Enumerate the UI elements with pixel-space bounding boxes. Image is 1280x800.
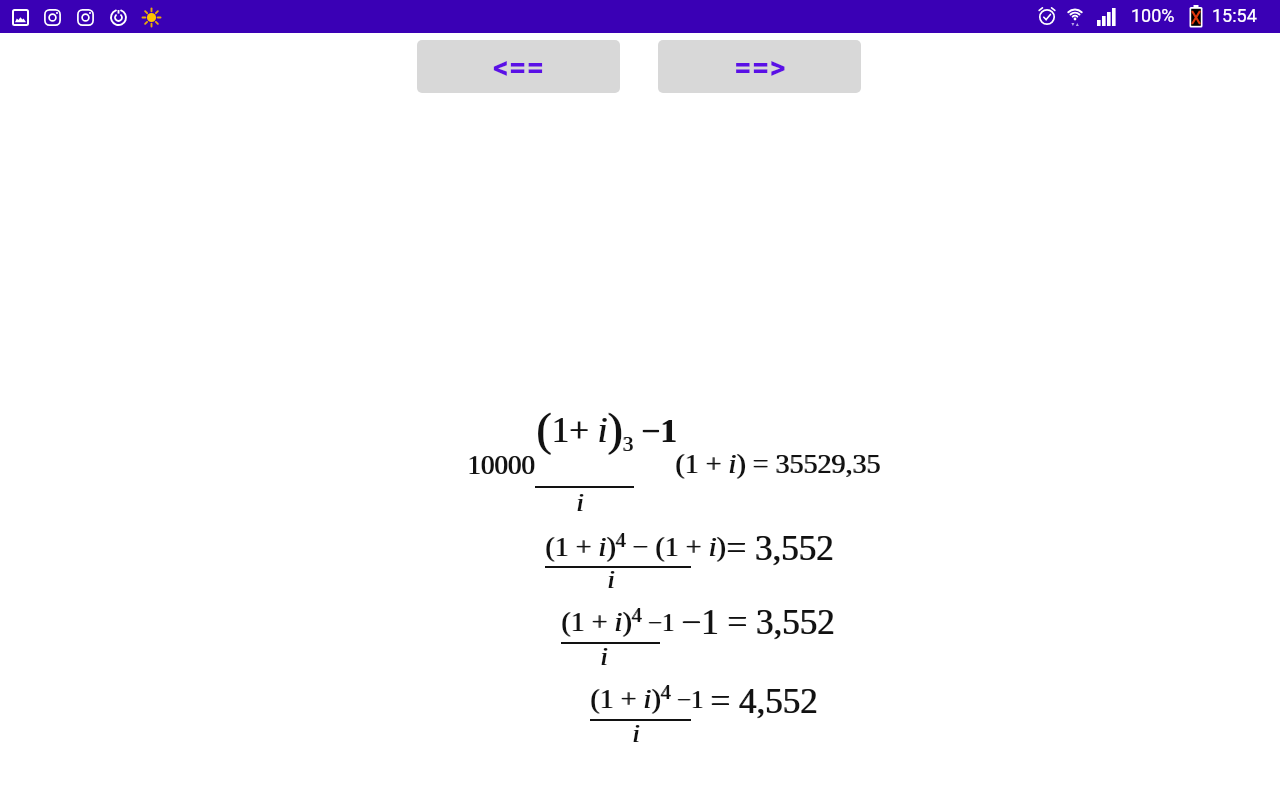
staticText: i xyxy=(608,565,616,594)
staticText: = 3,552 xyxy=(726,529,834,568)
staticText: i xyxy=(577,488,585,517)
staticText: (1 + i)4 −1 xyxy=(561,604,675,637)
staticText: (1 + i) = 35529,35 xyxy=(675,448,881,479)
staticText: i xyxy=(601,642,609,671)
staticText: i xyxy=(633,719,641,748)
staticText: (1+ i)3 −1 xyxy=(536,404,677,456)
staticText: 10000 xyxy=(468,450,536,480)
staticText: i xyxy=(607,565,615,594)
staticText: (1+ i)3 −1 xyxy=(537,404,678,456)
staticText: −1 = 3,552 xyxy=(682,603,836,642)
staticText: (1 + i)4 −1 xyxy=(590,681,704,714)
staticText: (1 + i) = 35529,35 xyxy=(676,448,882,479)
staticText: (1 + i)4 − (1 + i) xyxy=(545,529,726,562)
staticText: 15:54 xyxy=(1212,5,1257,26)
staticText: (1 + i)4 −1 xyxy=(562,604,676,637)
staticText: = 4,552 xyxy=(710,682,818,721)
staticText: = 3,552 xyxy=(727,529,835,568)
staticText: i xyxy=(576,488,584,517)
staticText: (1 + i)4 − (1 + i) xyxy=(546,529,727,562)
staticText: 100% xyxy=(1131,5,1175,26)
staticText: <== xyxy=(493,49,545,85)
staticText: = 4,552 xyxy=(711,682,819,721)
staticText: 10000 xyxy=(467,450,535,480)
button[interactable]: ==> xyxy=(658,40,861,93)
staticText: (1 + i)4 −1 xyxy=(591,681,705,714)
staticText: i xyxy=(632,719,640,748)
staticText: ==> xyxy=(734,49,786,85)
staticText: −1 = 3,552 xyxy=(681,603,835,642)
button[interactable]: <== xyxy=(417,40,620,93)
staticText: i xyxy=(600,642,608,671)
